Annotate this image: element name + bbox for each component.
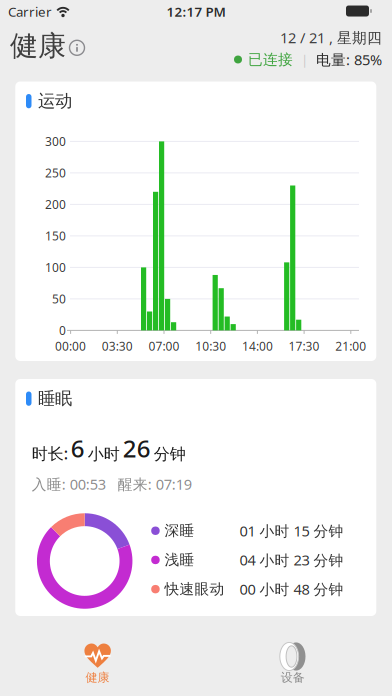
- staticText: 快速眼动: [164, 580, 224, 598]
- staticText: 入睡: 00:53: [32, 474, 106, 494]
- staticText: 21:00: [335, 338, 366, 354]
- staticText: 04 小时 23 分钟: [240, 550, 344, 570]
- staticText: 100: [45, 259, 66, 275]
- staticText: 26: [123, 432, 151, 464]
- staticText: 深睡: [164, 522, 194, 540]
- staticText: 14:00: [242, 338, 273, 354]
- staticText: 50: [52, 291, 66, 307]
- staticText: 浅睡: [164, 551, 194, 569]
- staticText: |: [301, 51, 308, 68]
- staticText: 已连接: [248, 50, 293, 68]
- staticText: 17:30: [289, 338, 320, 354]
- staticText: 6: [71, 432, 85, 464]
- staticText: 250: [45, 165, 66, 181]
- staticText: 睡眠: [38, 388, 72, 409]
- staticText: 10:30: [195, 338, 226, 354]
- button[interactable]: 健康: [48, 638, 146, 690]
- staticText: 00:00: [55, 338, 86, 354]
- staticText: 00 小时 48 分钟: [240, 579, 344, 599]
- staticText: 健康: [85, 670, 109, 685]
- staticText: 分钟: [154, 444, 186, 464]
- staticText: Carrier: [8, 3, 52, 20]
- staticText: 150: [45, 228, 66, 244]
- staticText: 小时: [88, 444, 120, 464]
- staticText: 12:17 PM: [166, 3, 225, 20]
- button[interactable]: [69, 40, 84, 55]
- button[interactable]: 设备: [244, 638, 342, 690]
- staticText: 电量: 85%: [316, 50, 382, 69]
- staticText: 01 小时 15 分钟: [240, 521, 344, 540]
- staticText: 200: [45, 196, 66, 212]
- staticText: 运动: [38, 90, 72, 112]
- staticText: 12 / 21 , 星期四: [280, 28, 382, 47]
- staticText: 时长:: [32, 443, 68, 464]
- staticText: 0: [59, 322, 66, 338]
- staticText: 设备: [281, 670, 305, 685]
- staticText: 07:00: [148, 338, 179, 354]
- staticText: 健康: [10, 29, 66, 63]
- staticText: 300: [45, 133, 66, 149]
- staticText: 醒来: 07:19: [118, 474, 192, 494]
- staticText: 03:30: [102, 338, 133, 354]
